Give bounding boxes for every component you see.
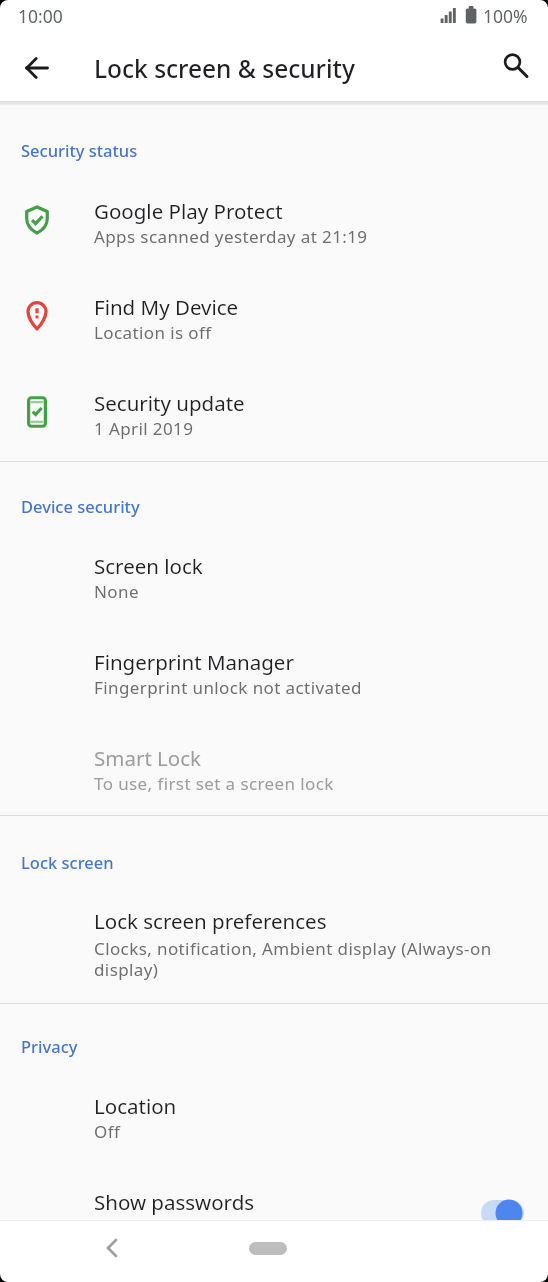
button[interactable]: Google Play Protect [0,175,548,271]
staticText: Lock screen & security [94,52,355,84]
staticText: Apps scanned yesterday at 21:19 [94,225,368,248]
button[interactable] [491,44,539,92]
button[interactable]: Screen lock [0,530,548,626]
staticText: Find My Device [94,293,239,321]
staticText: Smart Lock [94,744,202,772]
staticText: Off [94,1120,121,1143]
staticText: 10:00 [18,4,63,28]
staticText: Location is off [94,321,212,344]
staticText: Fingerprint unlock not activated [94,676,362,699]
staticText: None [94,580,139,603]
staticText: Security update [94,389,245,417]
staticText: Show passwords [94,1188,255,1216]
button[interactable]: Show passwords [0,1166,548,1262]
button[interactable] [89,1224,137,1272]
button[interactable]: Find My Device [0,271,548,367]
staticText: Clocks, notification, Ambient display (A… [94,937,492,960]
staticText: 100% [483,4,528,28]
staticText: Google Play Protect [94,197,283,225]
staticText: Device security [21,495,140,517]
button[interactable] [478,1198,528,1228]
staticText: Privacy [21,1035,78,1057]
staticText: Lock screen [21,851,114,873]
button[interactable] [249,1242,287,1255]
staticText: display) [94,958,159,981]
staticText: Security status [21,139,138,161]
staticText: 1 April 2019 [94,417,194,440]
staticText: Screen lock [94,552,203,580]
staticText: Fingerprint Manager [94,648,294,676]
staticText: Lock screen preferences [94,907,327,935]
button[interactable]: Security update [0,367,548,463]
staticText: Location [94,1092,177,1120]
button[interactable]: Location [0,1070,548,1166]
staticText: To use, first set a screen lock [94,772,334,795]
button[interactable]: Smart Lock [0,722,548,818]
button[interactable]: Fingerprint Manager [0,626,548,722]
button[interactable]: Lock screen preferences [0,885,548,1003]
button[interactable] [13,44,61,92]
